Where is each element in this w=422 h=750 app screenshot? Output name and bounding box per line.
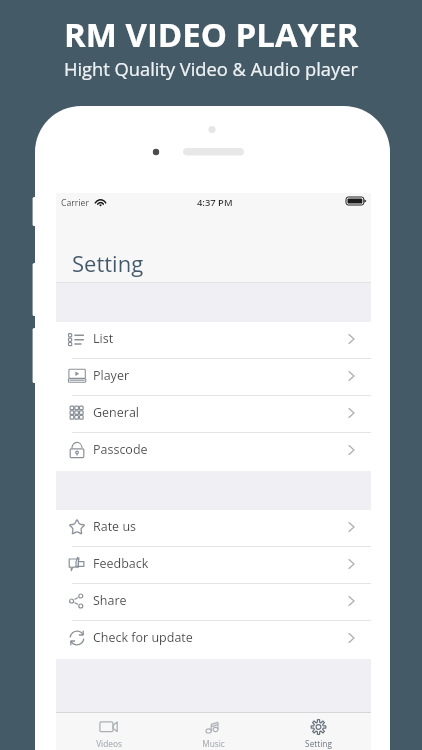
staticText: 4:37 PM [197, 196, 233, 209]
staticText: Check for update [93, 629, 193, 646]
staticText: Feedback [93, 555, 149, 572]
staticText: Rate us [93, 518, 137, 535]
staticText: Passcode [93, 441, 148, 458]
staticText: Player [93, 367, 130, 384]
button[interactable]: List [56, 322, 371, 359]
staticText: Hight Quality Video & Audio player [64, 56, 358, 81]
staticText: RM VIDEO PLAYER [64, 12, 359, 57]
button[interactable]: Player [56, 359, 371, 396]
staticText: Videos [96, 738, 122, 749]
staticText: Music [202, 738, 225, 749]
staticText: Carrier [61, 197, 90, 209]
button[interactable]: Setting [266, 713, 371, 750]
staticText: Share [93, 592, 127, 609]
button[interactable]: Videos [56, 713, 161, 750]
button[interactable]: Passcode [56, 433, 371, 470]
staticText: Setting [305, 738, 332, 749]
button[interactable]: Music [161, 713, 266, 750]
staticText: Setting [72, 248, 144, 278]
staticText: General [93, 404, 140, 421]
button[interactable]: Rate us [56, 510, 371, 547]
button[interactable]: General [56, 396, 371, 433]
button[interactable]: Feedback [56, 547, 371, 584]
staticText: List [93, 330, 114, 347]
button[interactable]: Check for update [56, 621, 371, 658]
button[interactable]: Share [56, 584, 371, 621]
